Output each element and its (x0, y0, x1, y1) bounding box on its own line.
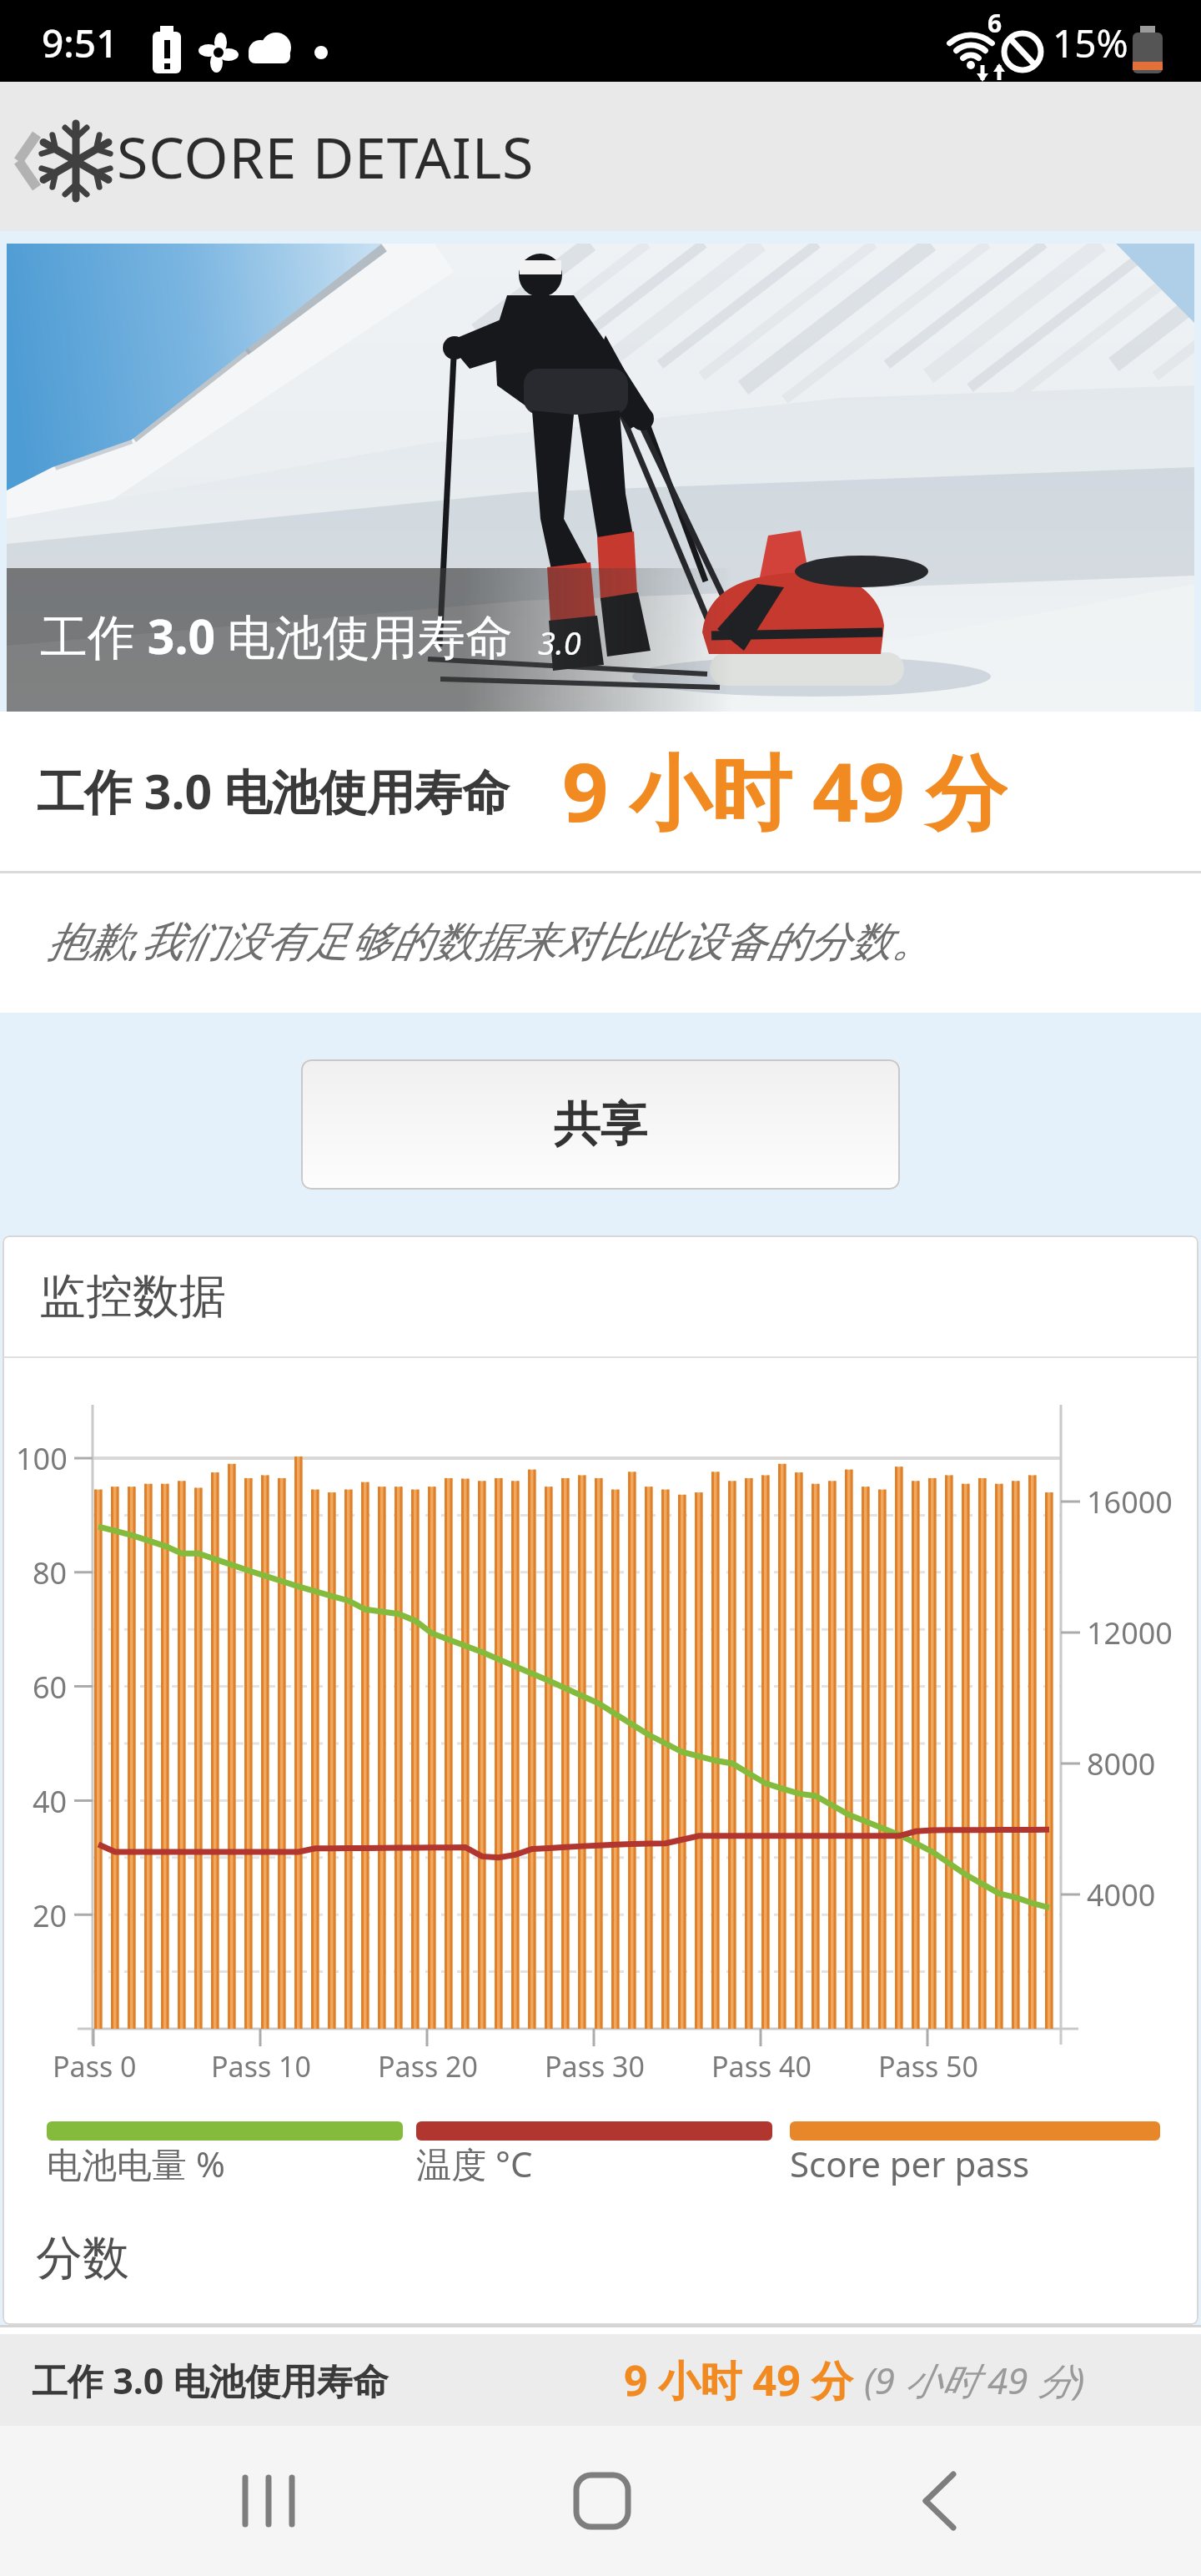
staticText: Pass 30 (545, 2047, 645, 2085)
staticText: 16000 (1087, 1482, 1173, 1522)
staticText: 工作 3.0 电池使用寿命 (32, 2356, 389, 2405)
staticText: 9 小时 49 分 (624, 2352, 853, 2408)
staticText: 15% (1053, 17, 1128, 69)
staticText: 工作 3.0 电池使用寿命 (40, 603, 513, 668)
button[interactable]: 共享 (301, 1059, 900, 1190)
staticText: 工作 3.0 电池使用寿命 (37, 758, 510, 823)
staticText: Pass 40 (711, 2047, 812, 2085)
staticText: 分数 (36, 2229, 129, 2288)
staticText: 40 (33, 1781, 68, 1822)
staticText: 4000 (1087, 1874, 1156, 1915)
staticText: Pass 10 (211, 2047, 311, 2085)
staticText: 温度 °C (416, 2140, 533, 2187)
staticText: Score per pass (790, 2140, 1030, 2187)
staticText: 80 (33, 1552, 68, 1593)
staticText: 9:51 (42, 17, 118, 69)
button[interactable]: SCORE DETAILS (0, 82, 535, 231)
staticText: (9 小时 49 分) (864, 2355, 1085, 2405)
staticText: Pass 50 (878, 2047, 978, 2085)
staticText: 9 小时 49 分 (562, 735, 1008, 835)
button[interactable] (848, 2426, 1032, 2576)
staticText: 8000 (1087, 1743, 1156, 1784)
staticText: 6 (987, 6, 1003, 40)
button[interactable] (177, 2426, 360, 2576)
staticText: 100 (16, 1438, 68, 1479)
staticText: 抱歉,我们没有足够的数据来对比此设备的分数。 (47, 912, 933, 969)
staticText: Pass 0 (53, 2047, 137, 2085)
staticText: 20 (33, 1895, 68, 1936)
button[interactable] (510, 2426, 694, 2576)
staticText: 3.0 (538, 621, 581, 664)
button[interactable]: 工作 3.0 电池使用寿命 (0, 2334, 1201, 2426)
staticText: SCORE DETAILS (117, 118, 535, 195)
staticText: 共享 (554, 1095, 647, 1155)
staticText: Pass 20 (378, 2047, 478, 2085)
staticText: 电池电量 % (47, 2140, 225, 2187)
staticText: 12000 (1087, 1613, 1173, 1653)
staticText: 60 (33, 1667, 68, 1708)
staticText: 监控数据 (39, 1267, 226, 1326)
